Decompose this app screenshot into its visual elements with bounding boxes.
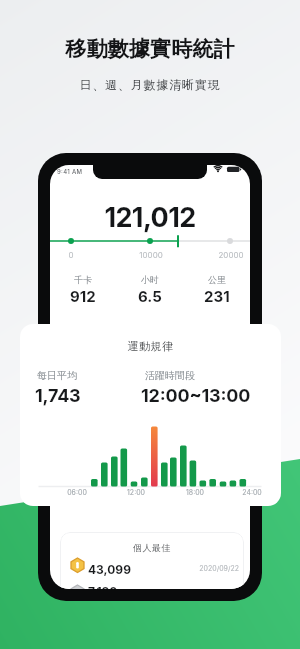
button[interactable]: 千卡 — [50, 274, 116, 305]
staticText: 43,099 — [88, 562, 131, 577]
staticText: 運動規律 — [20, 339, 281, 353]
button[interactable]: 運動規律 — [20, 324, 281, 506]
staticText: 121,012 — [50, 201, 250, 234]
staticText: 7,130 — [88, 584, 118, 589]
button[interactable]: 小时 — [116, 274, 183, 305]
staticText: 18:00 — [175, 488, 215, 496]
staticText: 9:41 AM — [57, 168, 83, 175]
staticText: 06:00 — [57, 488, 97, 496]
staticText: 千卡 — [74, 274, 92, 285]
staticText: 231 — [204, 287, 230, 305]
staticText: 912 — [70, 287, 96, 305]
staticText: 小时 — [141, 274, 159, 285]
staticText: 活躍時間段 — [145, 369, 195, 382]
staticText: 6.5 — [138, 287, 162, 305]
staticText: 24:00 — [232, 488, 272, 496]
staticText: 10000 — [131, 250, 171, 260]
button[interactable]: 個人最佳 — [60, 532, 244, 589]
staticText: 20000 — [211, 250, 250, 260]
staticText: 2020/09/22 — [60, 564, 239, 572]
button[interactable]: 公里 — [183, 274, 250, 305]
staticText: 個人最佳 — [60, 542, 244, 553]
staticText: 12:00~13:00 — [141, 385, 251, 407]
staticText: 0 — [51, 250, 91, 260]
staticText: 1,743 — [35, 385, 81, 407]
staticText: 每日平均 — [37, 369, 77, 382]
staticText: 12:00 — [116, 488, 156, 496]
staticText: 移動數據實時統計 — [0, 36, 300, 62]
staticText: 公里 — [208, 274, 226, 285]
staticText: 日、週、月數據清晰實現 — [0, 77, 300, 92]
